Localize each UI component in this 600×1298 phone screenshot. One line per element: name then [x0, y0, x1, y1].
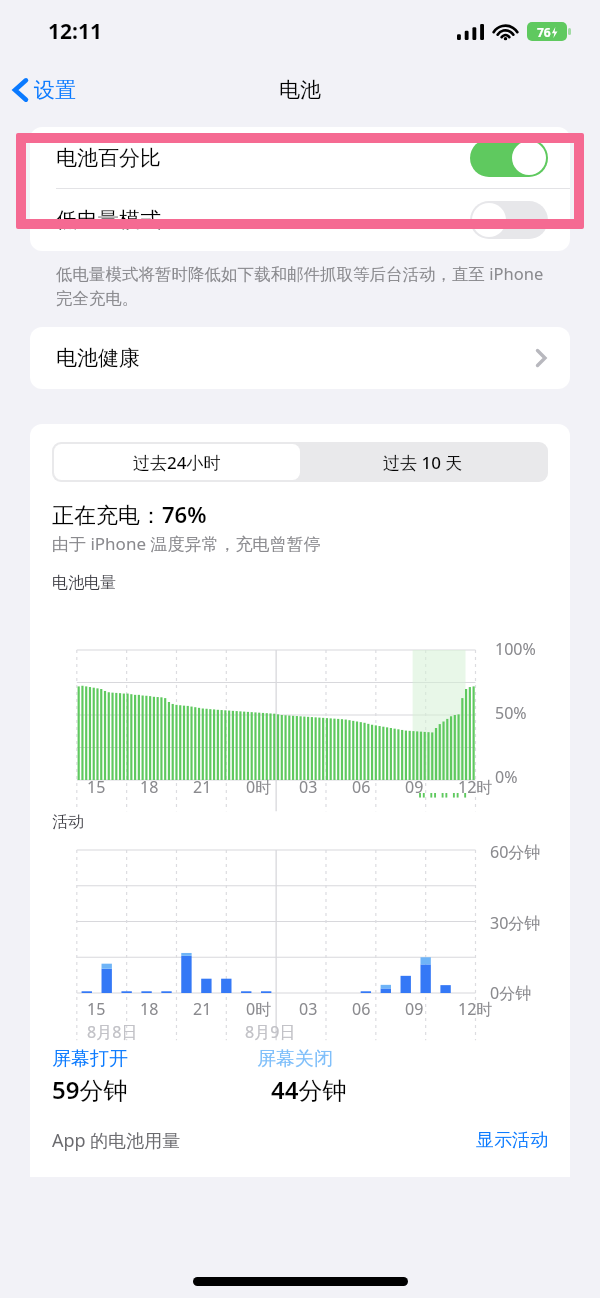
button[interactable]: Toggle on [470, 139, 548, 177]
staticText: 电池 [279, 77, 321, 103]
staticText: 0% [495, 766, 518, 788]
staticText: 09 [405, 776, 453, 798]
staticText: 设置 [34, 77, 76, 103]
staticText: 屏幕关闭 [257, 1047, 333, 1071]
staticText: 12:11 [48, 17, 102, 46]
staticText: 03 [299, 998, 347, 1020]
staticText: 15 [87, 776, 135, 798]
staticText: App 的电池用量 [52, 1128, 181, 1153]
staticText: 60分钟 [490, 841, 541, 863]
staticText: 12时 [458, 998, 506, 1020]
button[interactable]: 过去 10 天 [300, 444, 546, 480]
staticText: 06 [352, 776, 400, 798]
staticText: 18 [140, 998, 188, 1020]
staticText: 屏幕打开 [52, 1047, 128, 1071]
button[interactable]: Toggle off [470, 201, 548, 239]
staticText: 电池电量 [52, 573, 116, 593]
staticText: 06 [352, 998, 400, 1020]
staticText: 过去24小时 [133, 451, 221, 474]
staticText: 15 [87, 998, 135, 1020]
staticText: 09 [405, 998, 453, 1020]
button[interactable]: 显示活动 [476, 1129, 548, 1152]
staticText: 8月9日 [245, 1021, 296, 1043]
button[interactable]: 电池百分比 [30, 127, 570, 189]
staticText: 电池百分比 [56, 145, 470, 171]
staticText: 59分钟 [52, 1073, 128, 1106]
staticText: 显示活动 [476, 1129, 548, 1152]
staticText: 12时 [458, 776, 506, 798]
staticText: 30分钟 [490, 912, 541, 934]
staticText: 100% [495, 638, 536, 660]
staticText: 8月8日 [87, 1021, 240, 1043]
staticText: 电池健康 [56, 345, 536, 371]
staticText: 21 [193, 776, 241, 798]
staticText: 活动 [52, 812, 84, 832]
button[interactable]: 设置 [0, 71, 86, 109]
staticText: 21 [193, 998, 241, 1020]
staticText: 正在充电：76% [52, 499, 207, 529]
button[interactable]: 低电量模式 [30, 189, 570, 251]
staticText: 0时 [246, 998, 294, 1020]
staticText: 0时 [246, 776, 294, 798]
staticText: 03 [299, 776, 347, 798]
staticText: 50% [495, 702, 527, 724]
button[interactable]: 电池健康 [30, 327, 570, 389]
staticText: 0分钟 [490, 982, 532, 1004]
staticText: 44分钟 [271, 1073, 347, 1106]
staticText: 低电量模式将暂时降低如下载和邮件抓取等后台活动，直至 iPhone 完全充电。 [56, 262, 544, 309]
staticText: 76 [537, 24, 551, 40]
button[interactable]: 过去24小时 [54, 444, 300, 480]
staticText: 18 [140, 776, 188, 798]
staticText: 由于 iPhone 温度异常，充电曾暂停 [52, 532, 321, 555]
staticText: 过去 10 天 [383, 451, 463, 474]
staticText: 低电量模式 [56, 207, 470, 233]
